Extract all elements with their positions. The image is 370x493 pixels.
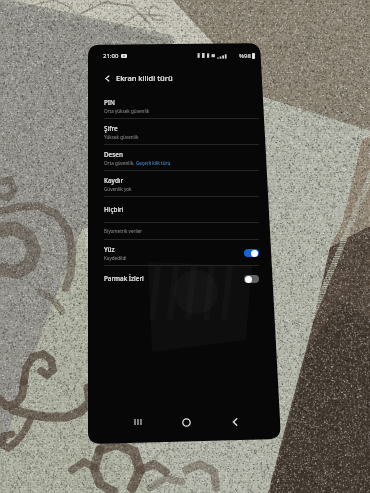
staticText: Güvenlik yok <box>104 186 132 192</box>
button[interactable]: Recents <box>127 412 149 432</box>
button[interactable]: Desen <box>104 145 259 170</box>
staticText: Yüz <box>104 245 115 254</box>
staticText: Desen <box>104 150 123 159</box>
button[interactable]: Back <box>101 72 113 84</box>
button[interactable]: Yüz <box>104 240 259 265</box>
button[interactable]: Parmak İzleri <box>244 275 259 283</box>
staticText: 21:00 <box>103 52 119 60</box>
staticText: Biyometrik veriler <box>104 228 143 234</box>
button[interactable]: Home <box>175 412 197 432</box>
staticText: Orta güvenlik, <box>104 160 136 166</box>
button[interactable]: Back <box>101 70 221 86</box>
button[interactable]: Kaydır <box>104 171 259 196</box>
staticText: Yüksek güvenlik <box>104 134 139 140</box>
staticText: Hiçbiri <box>104 205 124 214</box>
staticText: Parmak İzleri <box>104 274 144 283</box>
button[interactable]: Parmak İzleri <box>104 266 259 291</box>
staticText: %98 <box>239 52 251 60</box>
button[interactable]: Şifre <box>104 119 259 144</box>
staticText: Kaydır <box>104 176 124 185</box>
button[interactable]: PIN <box>104 93 259 118</box>
button[interactable]: Hiçbiri <box>104 197 259 222</box>
staticText: PIN <box>104 98 115 107</box>
staticText: Ekran kilidi türü <box>116 73 173 83</box>
staticText: Kaydedildi <box>104 255 127 261</box>
button[interactable]: Yüz <box>244 249 259 257</box>
button[interactable]: Back <box>224 412 246 432</box>
staticText: Şifre <box>104 124 118 133</box>
staticText: Orta yüksek güvenlik <box>104 108 150 114</box>
staticText: Geçerli kilit türü <box>136 160 171 166</box>
